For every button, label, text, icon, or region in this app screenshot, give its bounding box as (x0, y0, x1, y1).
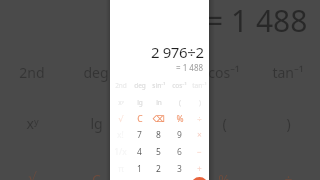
staticText: 7 (137, 129, 142, 141)
staticText: tan⁻¹ (192, 81, 207, 90)
staticText: % (218, 170, 230, 180)
staticText: cos⁻¹ (172, 81, 187, 90)
staticText: 8 (156, 129, 161, 141)
staticText: ÷ (284, 170, 293, 180)
button[interactable]: 4 (130, 144, 149, 160)
staticText: 6 (177, 146, 182, 158)
button[interactable]: cos⁻¹ (170, 77, 189, 93)
staticText: π (118, 163, 124, 175)
staticText: ) (199, 98, 201, 107)
staticText: ln (156, 98, 162, 107)
staticText: lg (137, 98, 143, 107)
staticText: ln (154, 114, 167, 133)
staticText: 9 (177, 129, 182, 141)
staticText: 1 (137, 163, 142, 175)
button[interactable]: 5 (149, 144, 168, 160)
staticText: lg (90, 114, 103, 133)
staticText: 2 (156, 163, 161, 175)
button[interactable]: − (190, 144, 209, 160)
button[interactable]: 2 (149, 161, 168, 177)
staticText: √ (118, 114, 124, 124)
button[interactable]: % (170, 111, 189, 127)
staticText: √ (28, 170, 37, 180)
staticText: % (176, 113, 184, 125)
button[interactable]: + (190, 161, 209, 177)
staticText: − (197, 146, 202, 158)
button[interactable]: deg (130, 77, 149, 93)
button[interactable]: 3 (170, 161, 189, 177)
button[interactable]: tan⁻¹ (190, 77, 209, 93)
staticText: deg (83, 63, 109, 82)
staticText: ⌫ (152, 114, 165, 124)
button[interactable]: C (130, 111, 149, 127)
staticText: xʸ (26, 114, 39, 133)
staticText: 5 (156, 146, 161, 158)
staticText: 3 (177, 163, 182, 175)
staticText: 2nd (115, 81, 127, 90)
staticText: sin⁻¹ (152, 81, 166, 90)
button[interactable]: ln (149, 94, 168, 110)
staticText: 2nd (19, 63, 45, 82)
staticText: 2 976÷2 (151, 42, 204, 62)
staticText: ( (179, 98, 181, 107)
staticText: + (197, 163, 202, 175)
staticText: tan⁻¹ (272, 63, 304, 82)
staticText: deg (134, 81, 146, 90)
staticText: C (137, 113, 143, 125)
staticText: = 1 488 (206, 0, 308, 41)
button[interactable]: lg (130, 94, 149, 110)
staticText: xʸ (118, 98, 124, 107)
button[interactable]: 8 (149, 127, 168, 143)
button[interactable]: ( (170, 94, 189, 110)
button[interactable]: × (190, 127, 209, 143)
button[interactable]: 1 (130, 161, 149, 177)
button[interactable]: ÷ (190, 111, 209, 127)
button[interactable]: sin⁻¹ (149, 77, 168, 93)
staticText: × (197, 129, 202, 141)
button[interactable]: √ (111, 111, 130, 127)
staticText: ) (286, 114, 291, 133)
staticText: 4 (137, 146, 142, 158)
button[interactable]: ⌫ (149, 111, 168, 127)
button[interactable]: Equals (191, 177, 208, 180)
staticText: ⌫ (150, 170, 170, 180)
staticText: C (92, 170, 101, 180)
staticText: = 1 488 (176, 62, 204, 73)
button[interactable]: 9 (170, 127, 189, 143)
staticText: ÷ (197, 113, 202, 125)
button[interactable]: 6 (170, 144, 189, 160)
button[interactable]: 7 (130, 127, 149, 143)
button[interactable]: 2nd (111, 77, 130, 93)
staticText: ( (222, 114, 227, 133)
staticText: cos⁻¹ (208, 63, 240, 82)
